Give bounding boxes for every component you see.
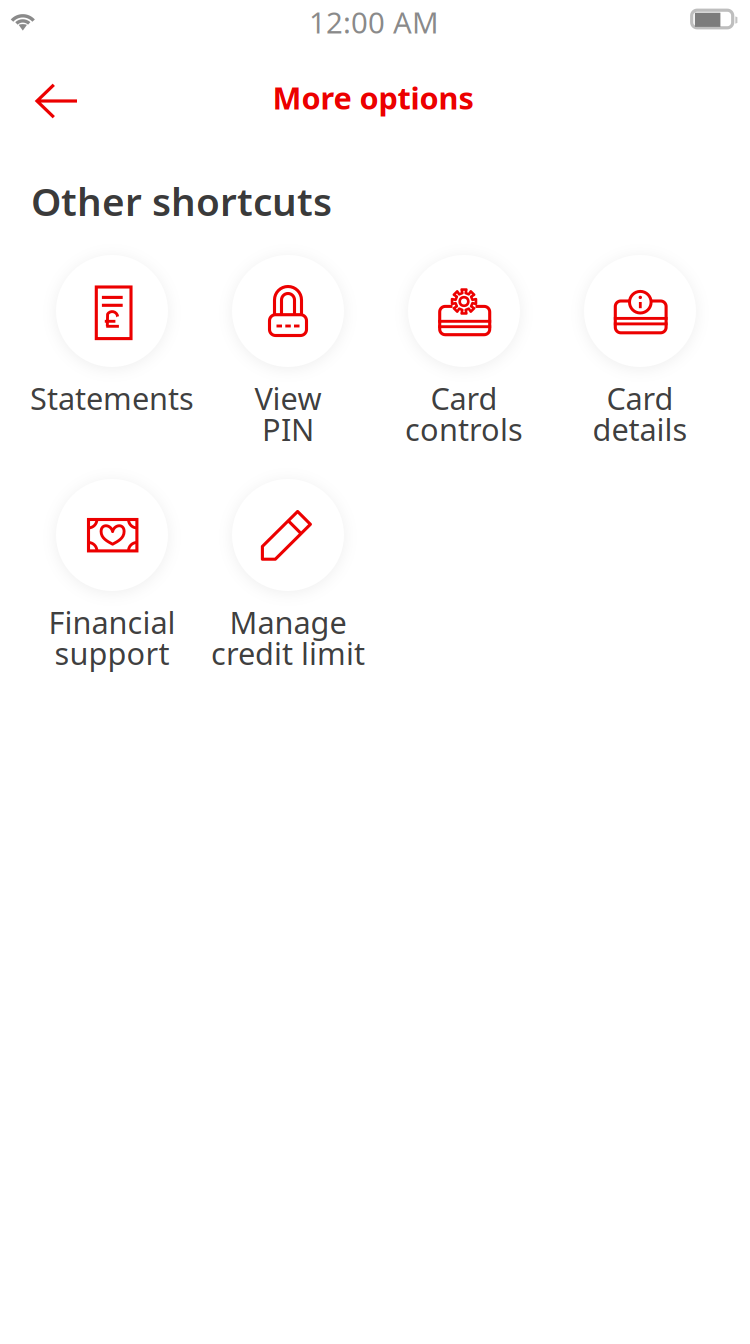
button[interactable]: Card details	[553, 251, 727, 463]
button[interactable]: Back	[22, 66, 100, 136]
staticText: Manage	[229, 602, 346, 642]
staticText: credit limit	[211, 633, 365, 673]
button[interactable]: View PIN	[201, 251, 375, 463]
staticText: Other shortcuts	[31, 175, 332, 227]
staticText: Card	[430, 378, 497, 418]
staticText: support	[54, 633, 169, 673]
button[interactable]: Card controls	[377, 251, 551, 463]
staticText: More options	[272, 77, 473, 118]
staticText: controls	[405, 409, 523, 449]
staticText: Card	[606, 378, 673, 418]
button[interactable]: Statements	[25, 251, 199, 463]
button[interactable]: More options	[213, 70, 533, 124]
staticText: details	[592, 409, 687, 449]
button[interactable]: Manage credit limit	[201, 475, 375, 687]
staticText: 12:00 AM	[309, 2, 439, 41]
staticText: PIN	[262, 409, 314, 449]
staticText: View	[254, 378, 321, 418]
staticText: Statements	[30, 378, 194, 418]
button[interactable]: Financial support	[25, 475, 199, 687]
staticText: Financial	[48, 602, 175, 642]
